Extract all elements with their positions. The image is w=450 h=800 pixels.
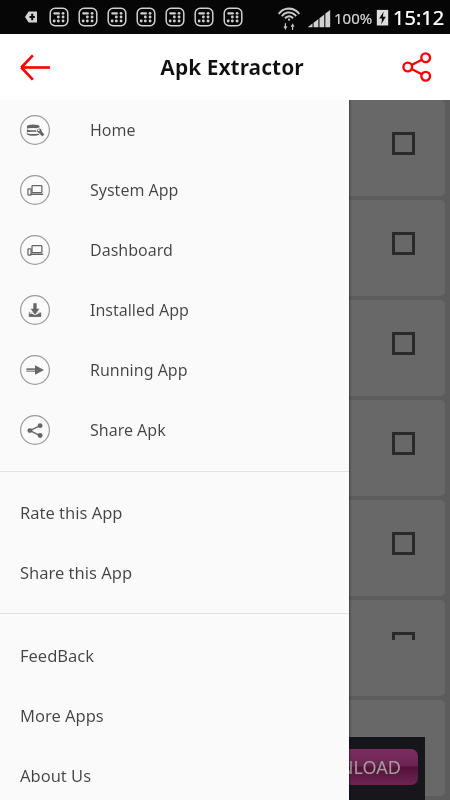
- button[interactable]: Back: [8, 41, 60, 93]
- button[interactable]: Share Apk: [0, 400, 349, 460]
- staticText: 15:12: [393, 4, 445, 31]
- staticText: Rate this App: [20, 501, 123, 523]
- staticText: FeedBack: [20, 644, 95, 666]
- button[interactable]: System App: [0, 160, 349, 220]
- staticText: Dashboard: [90, 239, 173, 261]
- staticText: Home: [90, 119, 136, 141]
- button[interactable]: Share this App: [0, 542, 349, 602]
- button[interactable]: More Apps: [0, 685, 349, 745]
- staticText: About Us: [20, 764, 92, 786]
- button[interactable]: DOWNLOAD: [279, 749, 418, 785]
- staticText: DOWNLOAD: [296, 755, 401, 780]
- staticText: Running App: [90, 359, 188, 381]
- button[interactable]: FeedBack: [0, 625, 349, 685]
- button[interactable]: Running App: [0, 340, 349, 400]
- staticText: More Apps: [20, 704, 104, 726]
- staticText: Share this App: [20, 561, 133, 583]
- button[interactable]: Home: [0, 100, 349, 160]
- staticText: System App: [90, 179, 179, 201]
- staticText: Share Apk: [90, 419, 166, 441]
- button[interactable]: Share: [392, 42, 442, 92]
- staticText: Installed App: [90, 299, 189, 321]
- staticText: 100%: [334, 8, 373, 28]
- button[interactable]: Dashboard: [0, 220, 349, 280]
- button[interactable]: Rate this App: [0, 482, 349, 542]
- button[interactable]: About Us: [0, 745, 349, 800]
- staticText: Apk Extractor: [160, 53, 304, 82]
- button[interactable]: Installed App: [0, 280, 349, 340]
